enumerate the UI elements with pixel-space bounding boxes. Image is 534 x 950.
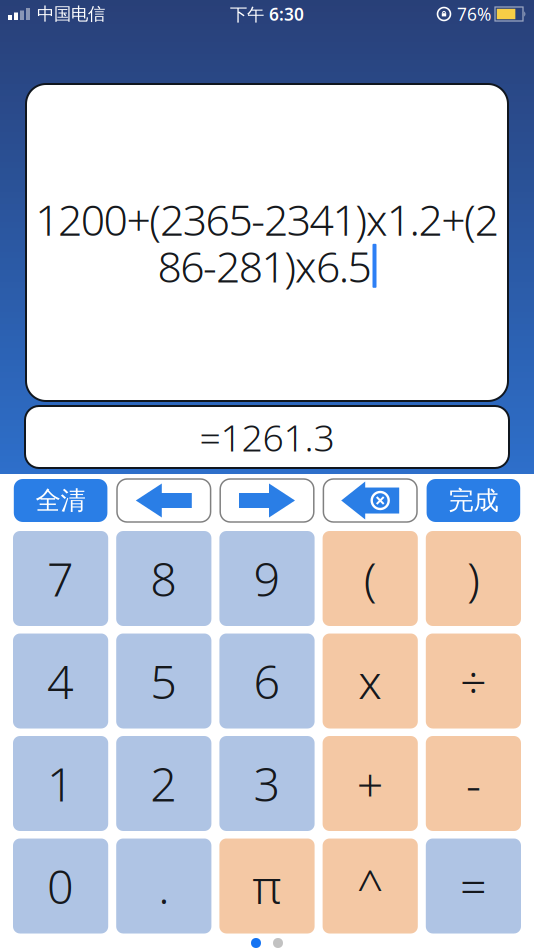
button[interactable]: . (116, 838, 211, 933)
button[interactable] (220, 479, 314, 522)
staticText: 5 (150, 650, 177, 712)
staticText: ) (467, 547, 480, 609)
button[interactable]: 2 (116, 736, 211, 831)
button[interactable]: ^ (323, 838, 418, 933)
button[interactable]: π (219, 838, 315, 933)
button[interactable]: 4 (13, 633, 108, 728)
button[interactable]: ÷ (426, 633, 521, 728)
button[interactable]: 8 (116, 531, 211, 626)
staticText: ( (364, 547, 377, 609)
staticText: 1 (47, 752, 74, 814)
staticText: 3 (253, 752, 280, 814)
button[interactable]: 1 (13, 736, 108, 831)
staticText: 完成 (448, 485, 498, 516)
button[interactable]: 3 (219, 736, 315, 831)
button[interactable]: 完成 (427, 479, 520, 522)
button[interactable]: ) (426, 531, 521, 626)
staticText: 下午 6:30 (230, 2, 304, 25)
staticText: 4 (47, 650, 74, 712)
button[interactable]: 7 (13, 531, 108, 626)
staticText: . (158, 855, 169, 917)
button[interactable]: 5 (116, 633, 211, 728)
staticText: ÷ (460, 650, 487, 712)
button[interactable]: = (426, 838, 521, 933)
staticText: x (358, 650, 382, 712)
button[interactable]: - (426, 736, 521, 831)
staticText: 1200+(2365-2341)x1.2+(2 (35, 191, 499, 247)
button[interactable]: 6 (219, 633, 315, 728)
staticText: 6 (253, 650, 280, 712)
button[interactable]: ( (323, 531, 418, 626)
staticText: = (460, 855, 487, 917)
staticText: 中国电信 (37, 3, 105, 25)
staticText: 全清 (36, 485, 86, 516)
staticText: =1261.3 (199, 412, 334, 462)
button[interactable] (117, 479, 211, 522)
staticText: + (357, 752, 384, 814)
staticText: 76% (457, 2, 491, 25)
button[interactable]: x (323, 633, 418, 728)
staticText: ^ (357, 855, 384, 917)
button[interactable]: 全清 (14, 479, 107, 522)
staticText: 86-281)x6.5 (157, 237, 371, 294)
button[interactable]: 0 (13, 838, 108, 933)
button[interactable]: + (323, 736, 418, 831)
staticText: - (466, 752, 481, 814)
button[interactable]: 9 (219, 531, 315, 626)
staticText: 7 (47, 547, 74, 609)
staticText: 0 (47, 855, 74, 917)
staticText: 9 (253, 547, 280, 609)
button[interactable] (323, 479, 417, 522)
staticText: 8 (150, 547, 177, 609)
staticText: 2 (150, 752, 177, 814)
staticText: π (252, 855, 281, 917)
